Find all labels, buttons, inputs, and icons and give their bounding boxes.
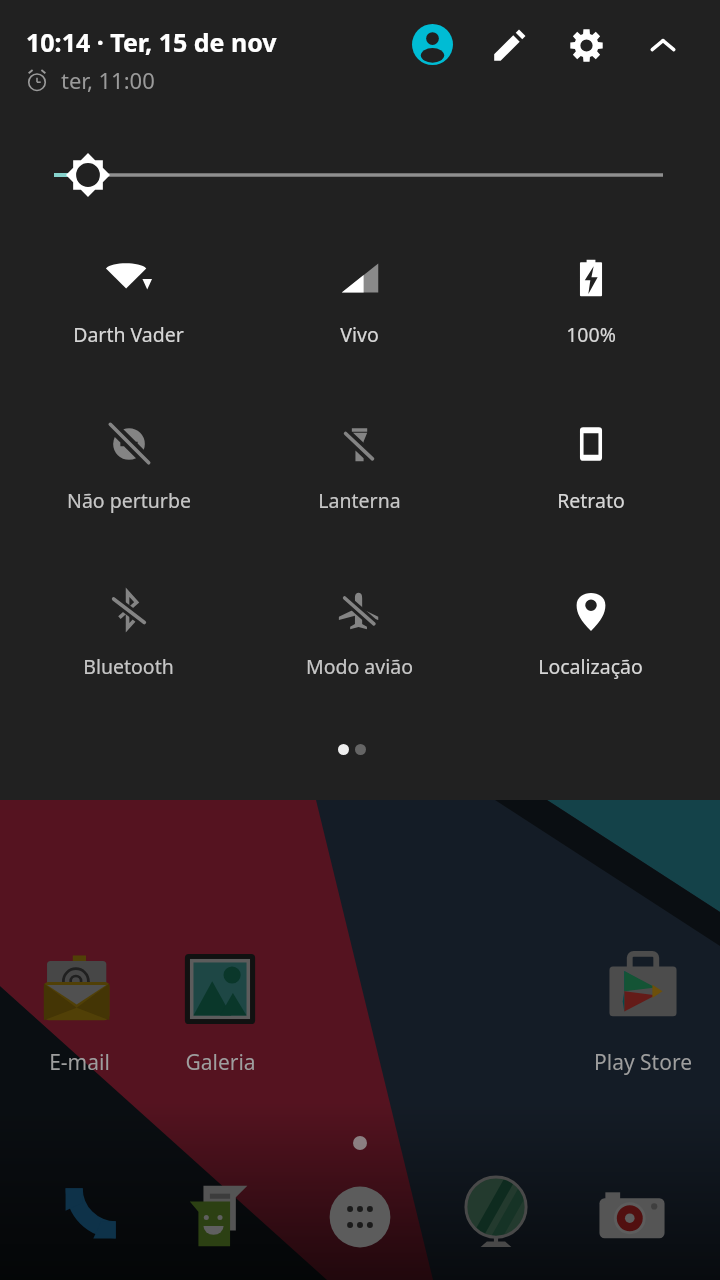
button[interactable]: Retrato	[475, 418, 706, 514]
button[interactable]: All apps	[329, 1186, 391, 1248]
button[interactable]: Settings	[555, 14, 617, 76]
button[interactable]: User profile	[401, 13, 463, 75]
button[interactable]: Messages	[184, 1180, 256, 1252]
button[interactable]: Phone	[55, 1183, 121, 1249]
button[interactable]: Localização	[475, 584, 706, 680]
button[interactable]: Edit tiles	[479, 14, 541, 76]
button[interactable]: E-mail	[0, 942, 159, 1074]
button[interactable]: Vivo	[244, 252, 475, 348]
staticText: Localização	[538, 653, 643, 680]
button[interactable]: Não perturbe	[13, 418, 244, 514]
button[interactable]: Camera	[595, 1179, 669, 1253]
staticText: Play Store	[594, 1048, 692, 1077]
staticText: Não perturbe	[67, 487, 191, 514]
button[interactable]: Brightness	[0, 149, 720, 201]
staticText: Darth Vader	[73, 321, 184, 348]
staticText: Galeria	[185, 1048, 256, 1077]
staticText: Vivo	[340, 321, 379, 348]
staticText: Bluetooth	[83, 653, 174, 680]
button[interactable]: 100%	[475, 252, 706, 348]
button[interactable]: Lanterna	[244, 418, 475, 514]
staticText: 100%	[566, 321, 616, 348]
staticText: Lanterna	[318, 487, 401, 514]
button[interactable]: Play Store	[563, 942, 720, 1074]
staticText: 10:14 · Ter, 15 de nov	[26, 25, 277, 59]
staticText: E-mail	[49, 1048, 110, 1077]
button[interactable]: Galeria	[140, 942, 300, 1074]
button[interactable]: Darth Vader	[13, 252, 244, 348]
button[interactable]: Modo avião	[244, 584, 475, 680]
button[interactable]: Collapse	[632, 15, 694, 77]
button[interactable]: Bluetooth	[13, 584, 244, 680]
staticText: ter, 11:00	[61, 65, 155, 95]
button[interactable]: Browser	[461, 1177, 531, 1247]
staticText: Modo avião	[306, 653, 413, 680]
staticText: Retrato	[557, 487, 625, 514]
